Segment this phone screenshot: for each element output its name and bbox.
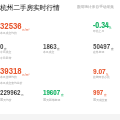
staticText: 本月成交均价 xyxy=(0,31,17,35)
staticText: 9.07 xyxy=(93,66,106,77)
staticText: 挂牌降价占比 xyxy=(93,75,110,79)
staticText: 数据统计来自手动采集 xyxy=(77,4,114,9)
staticText: -0.34 xyxy=(93,19,109,30)
staticText: 19607 xyxy=(43,87,61,97)
staticText: 本月挂牌均价 xyxy=(0,75,17,79)
staticText: 套 xyxy=(57,47,60,51)
staticText: 50497 xyxy=(93,41,111,51)
staticText: % xyxy=(109,26,112,30)
staticText: 30天均价 xyxy=(0,98,12,102)
staticText: 1863 xyxy=(43,41,57,51)
staticText: 元/m² xyxy=(22,28,30,32)
staticText: 今日成交 xyxy=(0,50,12,54)
staticText: 环比上月 xyxy=(93,29,105,33)
staticText: 32536 xyxy=(0,19,22,32)
staticText: 39318 xyxy=(0,64,22,77)
staticText: 套 xyxy=(104,93,107,97)
staticText: 元/m² xyxy=(22,73,30,77)
staticText: 0 xyxy=(0,41,4,51)
staticText: 杭州二手房实时行情 xyxy=(0,4,60,12)
staticText: % xyxy=(106,73,109,77)
staticText: 30天成交量 xyxy=(93,98,108,102)
staticText: 套 xyxy=(61,93,64,97)
staticText: 30天新增房源 xyxy=(43,98,61,102)
staticText: 元 xyxy=(21,93,24,97)
staticText: 229962 xyxy=(0,87,21,97)
staticText: 套 xyxy=(4,47,7,51)
staticText: 本月成交 xyxy=(43,50,55,54)
staticText: 997 xyxy=(93,87,104,97)
staticText: 本月成交套均总价 xyxy=(0,81,23,85)
staticText: 在售房源 xyxy=(93,50,105,54)
staticText: 今日新增 xyxy=(0,56,12,60)
staticText: 套 xyxy=(111,47,114,51)
